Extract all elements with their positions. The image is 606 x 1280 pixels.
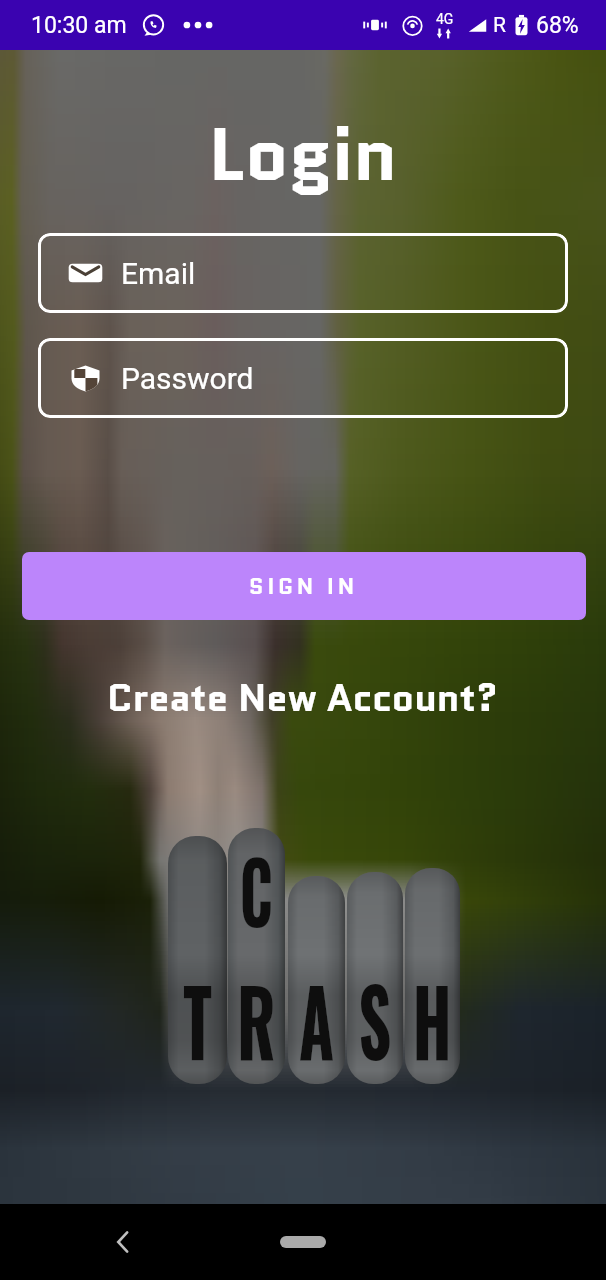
staticText: Email xyxy=(121,256,196,291)
button[interactable]: Create New Account? xyxy=(0,671,606,725)
staticText: 68% xyxy=(536,12,579,39)
staticText: 4G xyxy=(436,11,454,27)
staticText: Password xyxy=(121,361,254,396)
button[interactable]: Home xyxy=(280,1236,326,1248)
button[interactable]: SIGN IN xyxy=(22,552,586,620)
staticText: SIGN IN xyxy=(249,571,359,602)
button[interactable]: Password xyxy=(38,338,568,418)
staticText: 10:30 am xyxy=(31,12,127,39)
button[interactable]: Back xyxy=(108,1226,140,1258)
button[interactable]: Email xyxy=(38,233,568,313)
staticText: R xyxy=(493,13,506,38)
staticText: Create New Account? xyxy=(107,671,499,725)
staticText: Login xyxy=(0,101,606,207)
